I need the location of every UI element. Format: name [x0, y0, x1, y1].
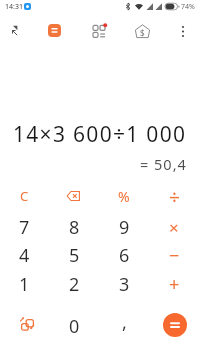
button[interactable] [6, 24, 22, 40]
button[interactable]: 2 [51, 271, 97, 297]
button[interactable]: 8 [51, 214, 97, 240]
staticText: 5 [69, 243, 80, 268]
button[interactable]: ÷ [151, 184, 197, 210]
staticText: − [169, 243, 180, 268]
staticText: 14×3 600÷1 000 [13, 120, 187, 149]
staticText: $ [140, 27, 145, 38]
button[interactable]: 1 [1, 271, 47, 297]
staticText: 1 [19, 272, 30, 297]
staticText: ÷ [169, 184, 180, 210]
staticText: % [118, 187, 130, 206]
button[interactable]: $ [134, 23, 151, 40]
staticText: 74% [181, 2, 195, 12]
button[interactable] [176, 24, 190, 38]
staticText: 7 [19, 215, 30, 240]
button[interactable]: 0 [51, 313, 97, 339]
staticText: = 50,4 [140, 154, 187, 174]
button[interactable]: × [151, 214, 197, 240]
staticText: 6 [119, 243, 130, 268]
staticText: 3 [119, 272, 130, 297]
button[interactable] [51, 183, 97, 209]
button[interactable] [4, 311, 50, 337]
button[interactable]: , [101, 309, 147, 335]
button[interactable] [163, 313, 187, 337]
button[interactable]: 5 [51, 242, 97, 268]
staticText: 0 [69, 314, 80, 339]
button[interactable] [48, 24, 61, 37]
staticText: C [20, 187, 29, 205]
button[interactable]: − [151, 242, 197, 268]
staticText: + [169, 272, 180, 297]
button[interactable]: 6 [101, 242, 147, 268]
button[interactable]: % [101, 183, 147, 209]
staticText: 14:31 [5, 2, 23, 12]
staticText: 9 [119, 215, 130, 240]
button[interactable]: 7 [1, 214, 47, 240]
staticText: , [122, 310, 127, 335]
staticText: 8 [69, 215, 80, 240]
button[interactable]: 4 [1, 242, 47, 268]
button[interactable]: + [151, 271, 197, 297]
staticText: 2 [69, 272, 80, 297]
button[interactable]: 3 [101, 271, 147, 297]
button[interactable] [90, 22, 108, 40]
button[interactable]: C [1, 183, 47, 209]
staticText: 4 [19, 243, 30, 268]
staticText: × [169, 216, 179, 239]
button[interactable]: 9 [101, 214, 147, 240]
